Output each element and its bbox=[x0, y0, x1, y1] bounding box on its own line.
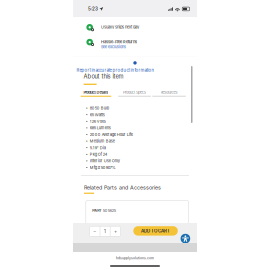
button[interactable]: See exclusions bbox=[101, 45, 126, 49]
staticText: hdsupplysolutions.com bbox=[116, 256, 154, 260]
button[interactable]: ADD TO CART bbox=[133, 226, 178, 236]
staticText: Medium Base bbox=[90, 139, 115, 143]
staticText: PART bbox=[92, 208, 101, 213]
staticText: 126 Volts bbox=[90, 119, 106, 124]
staticText: 5.19" Dia bbox=[90, 145, 106, 150]
button[interactable]: PART bbox=[86, 201, 189, 227]
staticText: Pkg Of 24 bbox=[90, 152, 108, 157]
button[interactable]: Product Specs bbox=[118, 89, 151, 97]
staticText: 5:23 bbox=[88, 6, 98, 12]
staticText: Product Specs bbox=[123, 90, 146, 95]
button[interactable]: Increase quantity bbox=[110, 226, 121, 236]
staticText: 8050 Bulb bbox=[90, 106, 109, 110]
staticText: See exclusions bbox=[101, 45, 126, 49]
staticText: Mfg #50907% bbox=[90, 165, 116, 170]
button[interactable]: Product Details bbox=[81, 89, 111, 97]
staticText: Hassle-Free Returns bbox=[101, 39, 137, 44]
button[interactable]: Report inaccurate product information bbox=[76, 67, 154, 73]
staticText: 685 Lumens bbox=[90, 125, 111, 130]
staticText: 2000 Average Hour Life bbox=[90, 132, 133, 137]
staticText: Interior Use Only bbox=[90, 158, 120, 163]
button[interactable]: Decrease quantity bbox=[89, 226, 100, 236]
staticText: ADD TO CART bbox=[141, 228, 170, 234]
button[interactable]: hdsupplysolutions.com bbox=[116, 256, 154, 260]
staticText: Usually ships next day bbox=[101, 25, 139, 29]
staticText: 505625 bbox=[103, 208, 116, 213]
staticText: – bbox=[94, 228, 96, 234]
staticText: Resources bbox=[161, 90, 178, 95]
button[interactable]: Resources bbox=[152, 89, 186, 97]
staticText: 65 Watts bbox=[90, 112, 105, 117]
staticText: Report inaccurate product information bbox=[76, 67, 154, 73]
staticText: Product Details bbox=[83, 90, 108, 95]
staticText: 1 bbox=[104, 229, 106, 234]
staticText: + bbox=[114, 228, 117, 234]
button[interactable]: Accessibility options bbox=[181, 234, 190, 243]
staticText: Related Parts and Accessories bbox=[84, 184, 161, 191]
staticText: About this item bbox=[84, 73, 124, 80]
